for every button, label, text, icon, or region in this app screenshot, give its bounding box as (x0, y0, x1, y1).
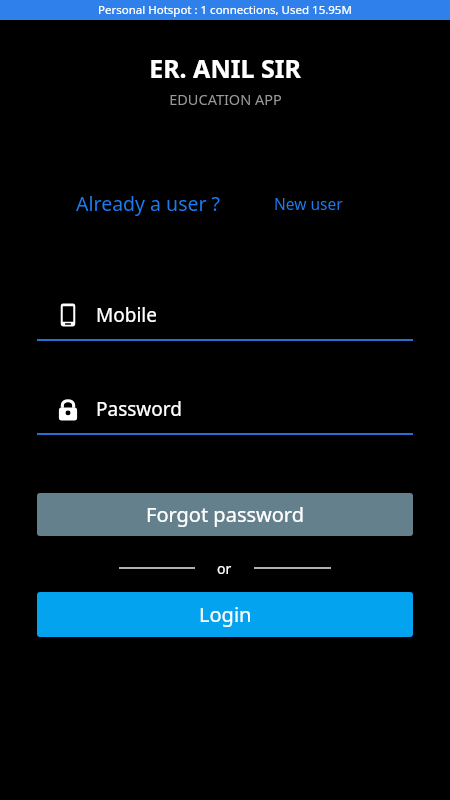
button[interactable]: Login (37, 592, 413, 637)
button[interactable]: New user (264, 187, 353, 220)
staticText: EDUCATION APP (169, 89, 282, 109)
staticText: or (217, 559, 232, 578)
button[interactable]: Password (37, 385, 413, 435)
staticText: Login (199, 601, 252, 628)
button[interactable]: Mobile number (37, 291, 413, 341)
button[interactable]: Forgot password (37, 493, 413, 536)
staticText: Personal Hotspot : 1 connections, Used 1… (98, 2, 352, 18)
staticText: Already a user ? (76, 190, 221, 217)
other: Password (55, 396, 81, 422)
other: Mobile number (55, 302, 81, 328)
button[interactable]: Already a user ? (60, 184, 237, 223)
staticText: Password (96, 396, 182, 422)
staticText: Mobile (96, 302, 157, 328)
staticText: Forgot password (146, 501, 305, 528)
staticText: ER. ANIL SIR (149, 51, 301, 85)
staticText: New user (274, 193, 343, 214)
